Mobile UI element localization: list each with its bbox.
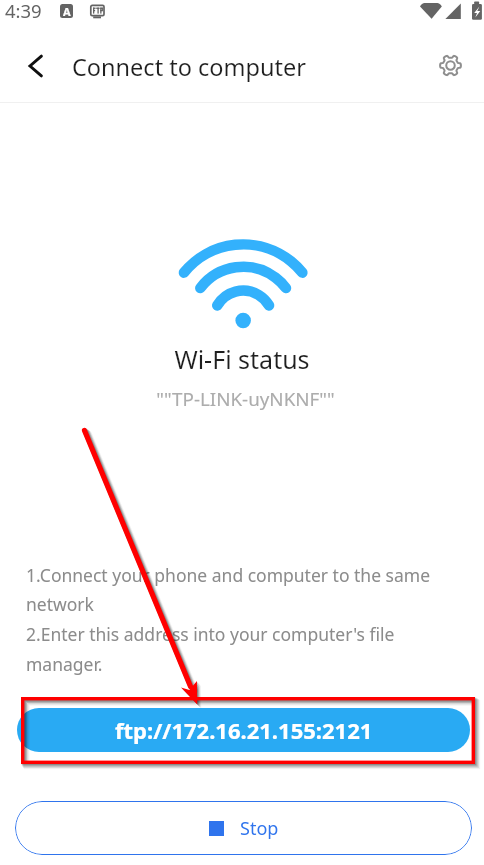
staticText: Stop [240, 816, 279, 841]
staticText: ""TP-LINK-uyNKNF"" [7, 386, 484, 412]
staticText: Wi-Fi status [0, 342, 484, 376]
button[interactable]: Stop [15, 801, 472, 855]
staticText: 4:39 [5, 0, 42, 23]
staticText: 1.Connect your phone and computer to the… [26, 563, 458, 676]
button[interactable]: Settings [428, 46, 472, 90]
staticText: Connect to computer [72, 51, 306, 83]
button[interactable]: ftp://172.16.21.155:2121 [17, 708, 470, 752]
staticText: A [63, 4, 71, 18]
staticText: ftp://172.16.21.155:2121 [115, 715, 373, 745]
button[interactable]: Back [14, 46, 58, 90]
